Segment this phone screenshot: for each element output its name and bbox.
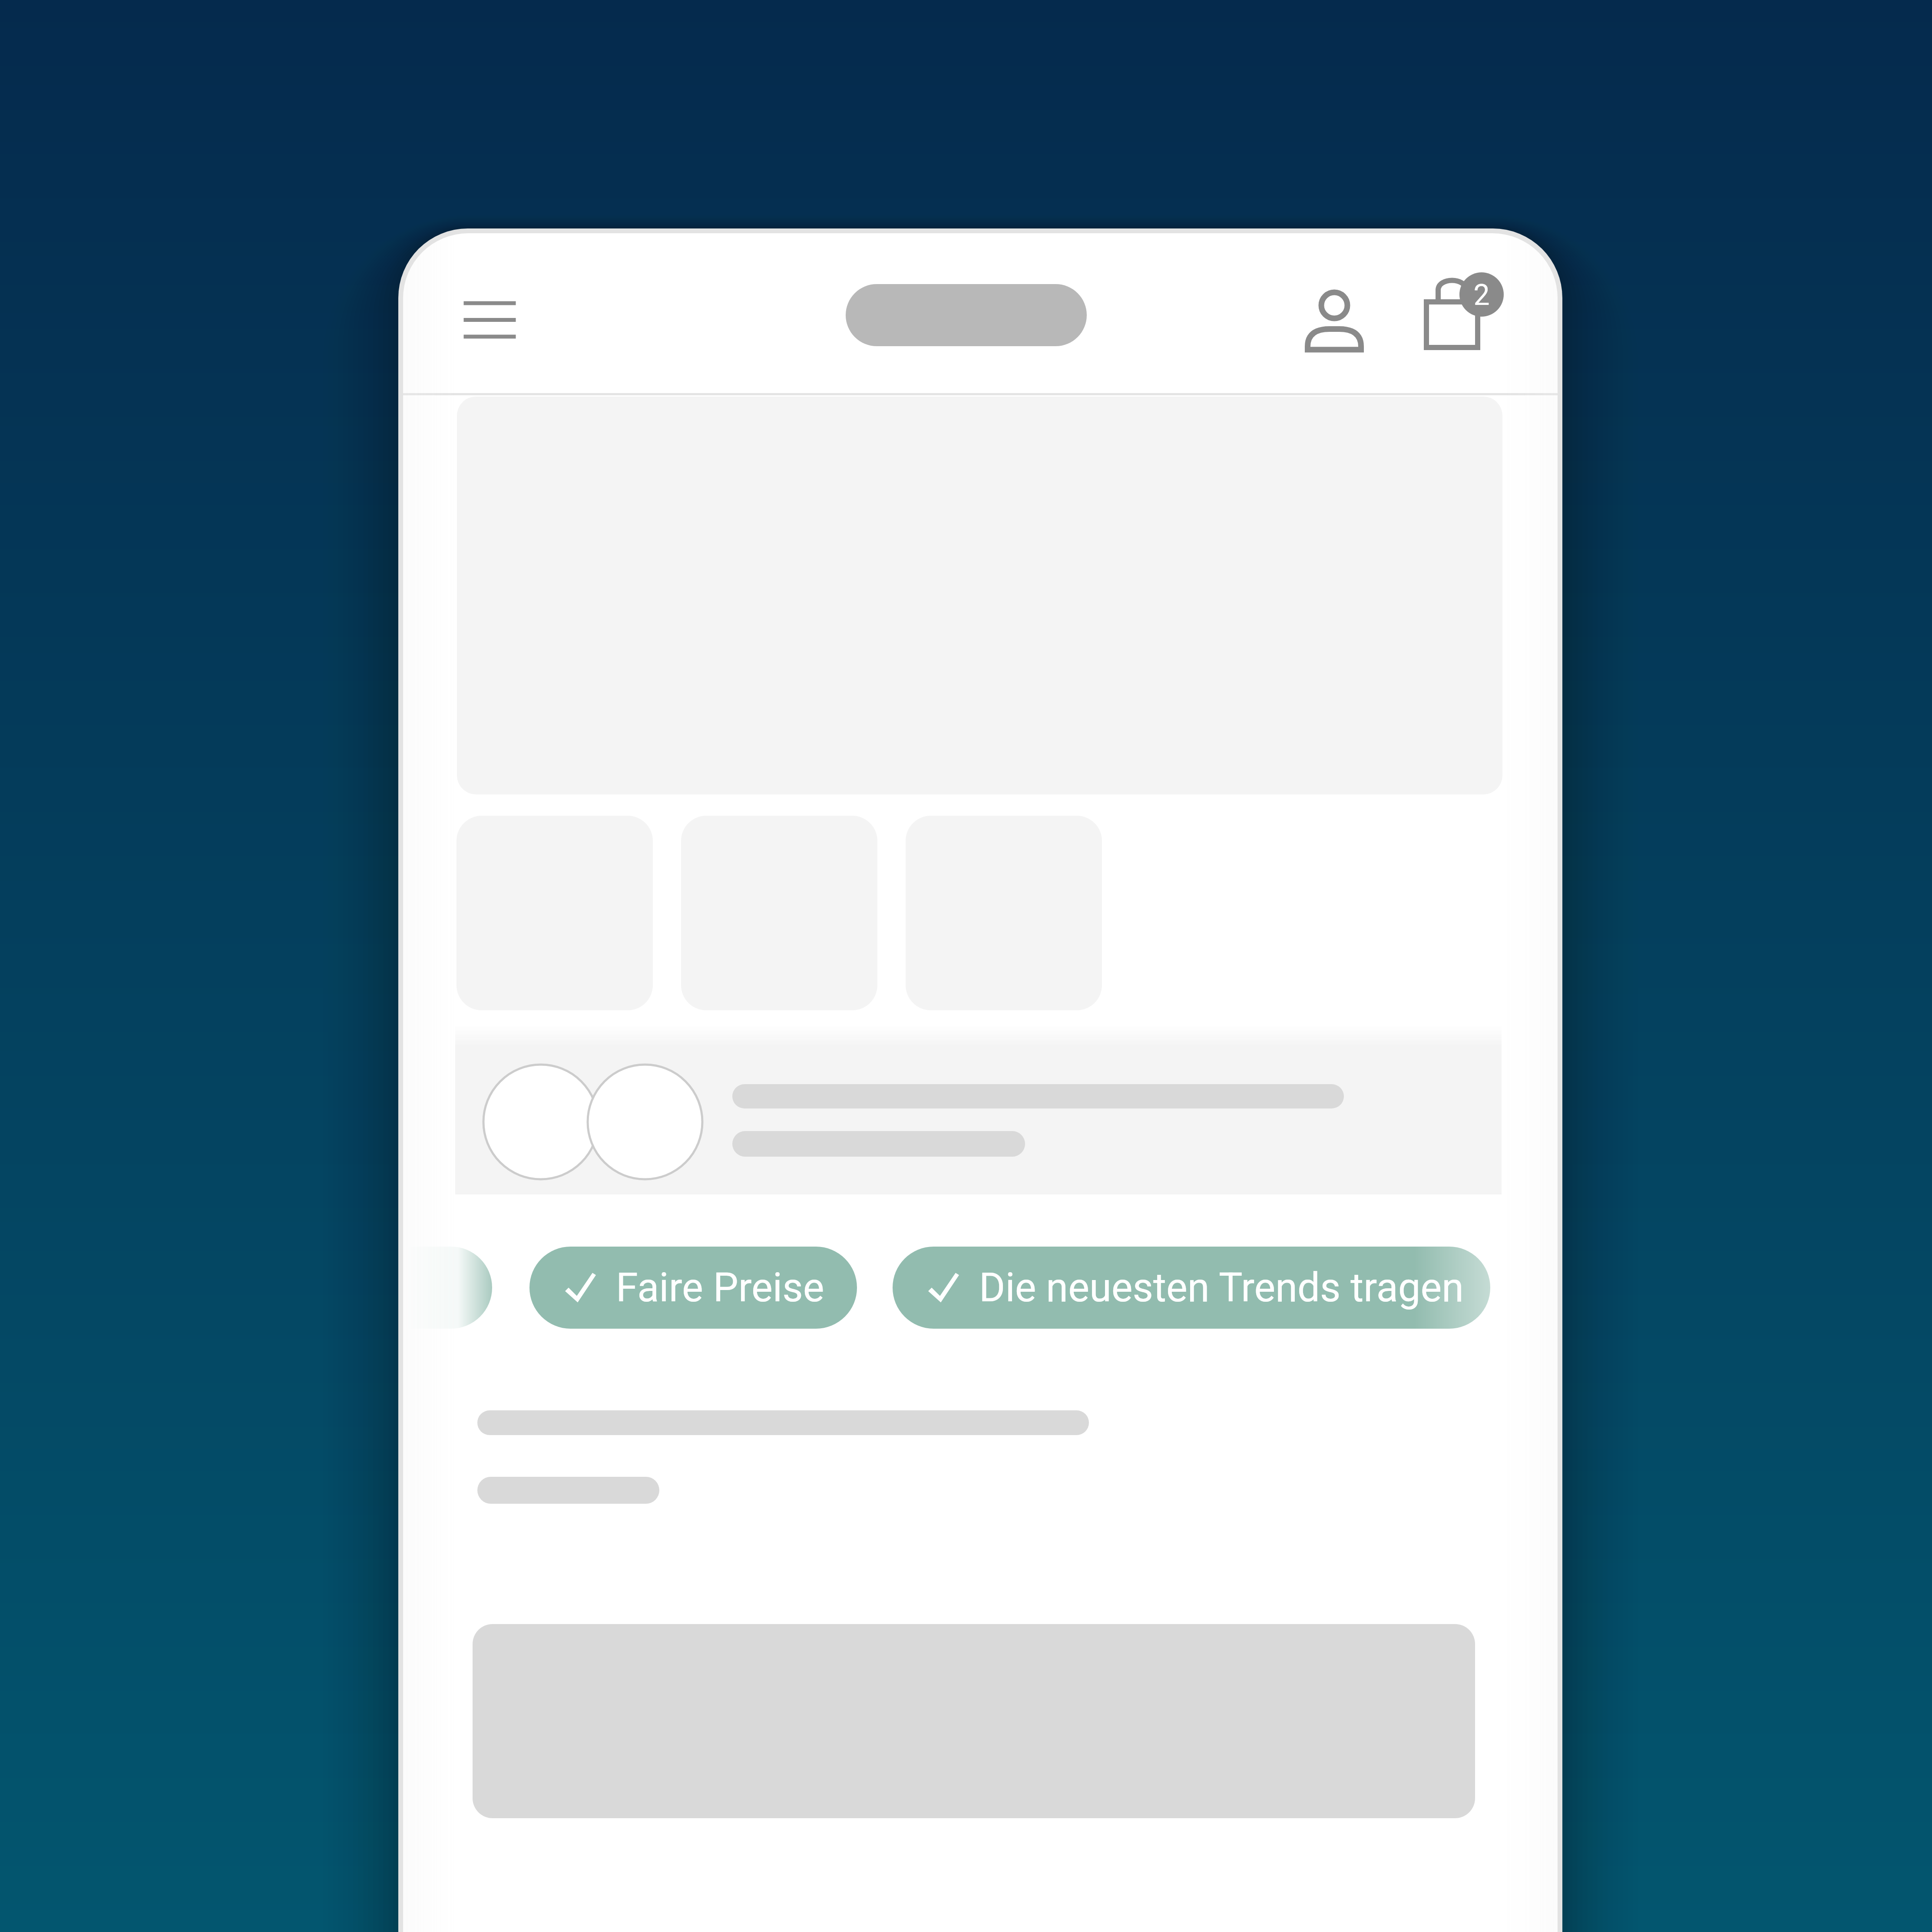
- staticText: Faire Preise: [616, 1264, 824, 1311]
- button[interactable]: Search: [846, 284, 1087, 346]
- button[interactable]: Shopping bag, 2 items: [1380, 255, 1528, 385]
- staticText: 2: [1460, 278, 1503, 322]
- button[interactable]: Faire Preise: [529, 1247, 857, 1329]
- staticText: Die neuesten Trends tragen: [979, 1264, 1464, 1311]
- button[interactable]: Open navigation menu: [429, 268, 550, 371]
- button[interactable]: Account: [1257, 267, 1380, 371]
- button[interactable]: Die neuesten Trends tragen: [893, 1247, 1490, 1329]
